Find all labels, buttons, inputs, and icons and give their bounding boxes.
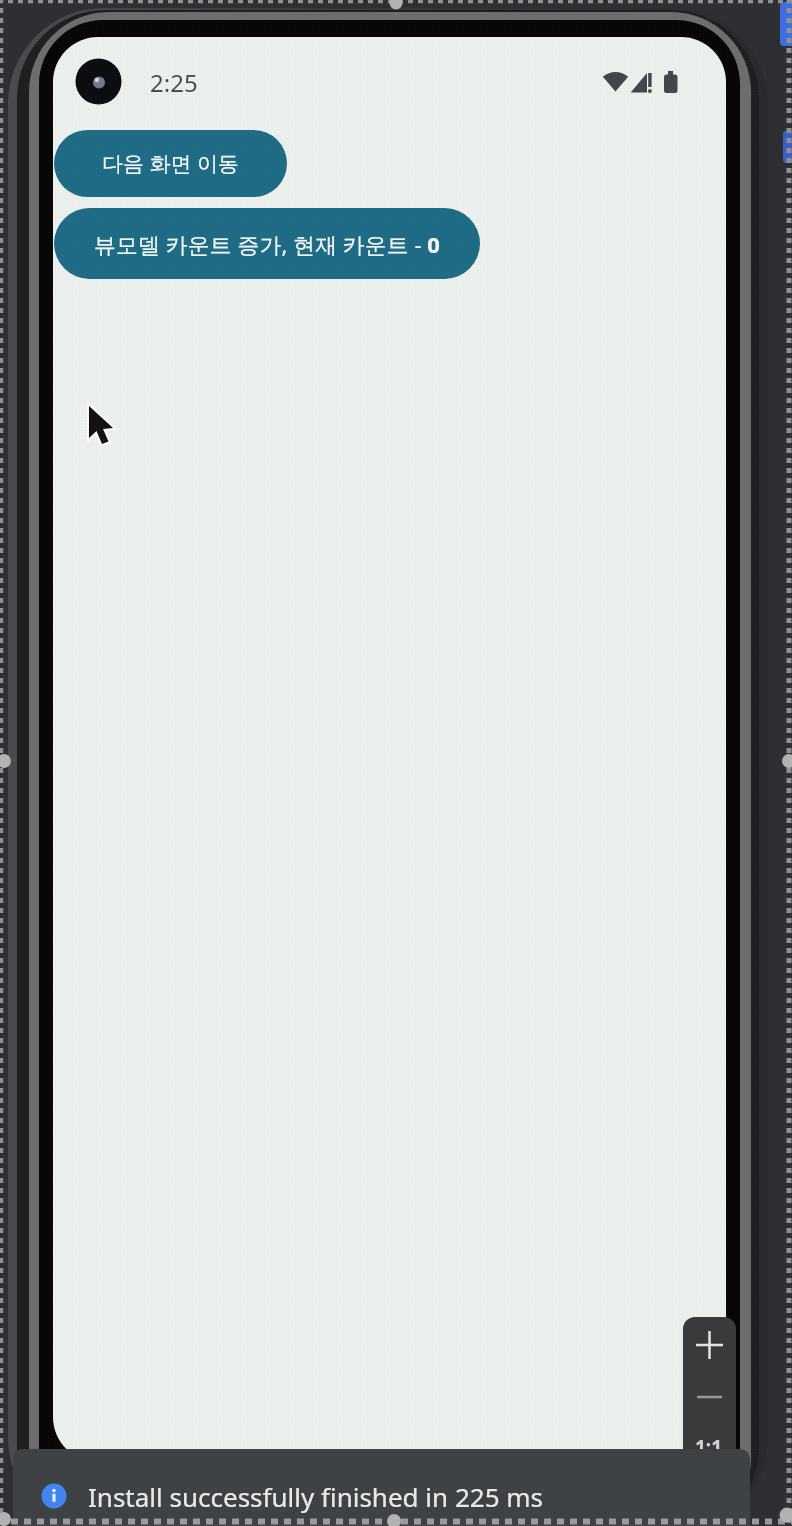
staticText: 1:1	[695, 1434, 723, 1460]
button[interactable]: 1:1	[683, 1317, 736, 1526]
button[interactable]: 뷰모델 카운트 증가, 현재 카운트 - 0	[54, 208, 480, 279]
staticText: 2:25	[150, 66, 198, 99]
staticText: 뷰모델 카운트 증가, 현재 카운트 - 0	[94, 229, 440, 259]
button[interactable]: Install successfully finished in 225 ms	[13, 1449, 750, 1526]
staticText: Install successfully finished in 225 ms	[88, 1479, 544, 1514]
button[interactable]: 다음 화면 이동	[54, 130, 287, 197]
staticText: 다음 화면 이동	[102, 149, 239, 178]
